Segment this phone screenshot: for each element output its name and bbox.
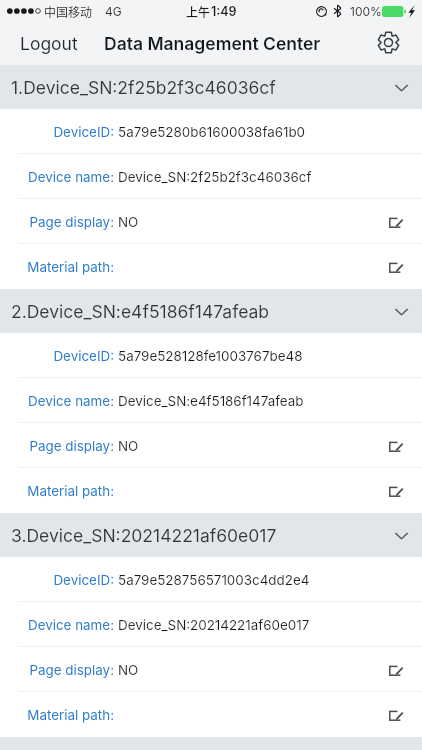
button[interactable]: Edit Page display: bbox=[379, 423, 413, 468]
staticText: Logout bbox=[20, 33, 78, 54]
staticText: NO bbox=[118, 662, 139, 678]
button[interactable]: Settings bbox=[371, 25, 405, 59]
button[interactable]: 3.Device_SN:20214221af60e017 bbox=[0, 513, 422, 557]
staticText: Material path: bbox=[27, 707, 114, 723]
staticText: 3.Device_SN:20214221af60e017 bbox=[11, 525, 277, 546]
button[interactable]: Device name: bbox=[0, 602, 422, 647]
staticText: DeviceID: bbox=[53, 124, 114, 140]
button[interactable]: 1.Device_SN:2f25b2f3c46036cf bbox=[0, 65, 422, 109]
button[interactable]: Edit Material path: bbox=[379, 692, 413, 737]
staticText: Device_SN:20214221af60e017 bbox=[118, 617, 310, 633]
staticText: Page display: bbox=[29, 662, 114, 678]
staticText: DeviceID: bbox=[53, 572, 114, 588]
button[interactable]: Device name: bbox=[0, 378, 422, 423]
button[interactable]: Page display: bbox=[0, 647, 422, 692]
staticText: 1:49 bbox=[211, 4, 237, 19]
staticText: Page display: bbox=[29, 214, 114, 230]
button[interactable]: Edit Page display: bbox=[379, 199, 413, 244]
button[interactable]: Material path: bbox=[0, 692, 422, 737]
staticText: Material path: bbox=[27, 259, 114, 275]
staticText: 1.Device_SN:2f25b2f3c46036cf bbox=[11, 77, 276, 98]
staticText: 4G bbox=[105, 4, 122, 19]
staticText: 5a79e5280b61600038fa61b0 bbox=[118, 124, 306, 140]
staticText: 上午 bbox=[186, 3, 211, 20]
button[interactable]: DeviceID: bbox=[0, 333, 422, 378]
button[interactable]: Page display: bbox=[0, 199, 422, 244]
staticText: Device name: bbox=[27, 393, 114, 409]
button[interactable]: Edit Material path: bbox=[379, 244, 413, 289]
button[interactable]: Edit Material path: bbox=[379, 468, 413, 513]
button[interactable]: Logout bbox=[16, 27, 82, 60]
staticText: NO bbox=[118, 214, 139, 230]
button[interactable]: 2.Device_SN:e4f5186f147afeab bbox=[0, 289, 422, 333]
staticText: 5a79e528128fe1003767be48 bbox=[118, 348, 303, 364]
staticText: DeviceID: bbox=[53, 348, 114, 364]
button[interactable]: DeviceID: bbox=[0, 109, 422, 154]
staticText: 中国移动 bbox=[44, 3, 93, 20]
staticText: Page display: bbox=[29, 438, 114, 454]
staticText: 2.Device_SN:e4f5186f147afeab bbox=[11, 301, 270, 322]
staticText: 100% bbox=[350, 4, 382, 19]
staticText: Device_SN:2f25b2f3c46036cf bbox=[118, 169, 312, 185]
staticText: Material path: bbox=[27, 483, 114, 499]
staticText: Device name: bbox=[27, 169, 114, 185]
button[interactable]: Device name: bbox=[0, 154, 422, 199]
button[interactable]: Page display: bbox=[0, 423, 422, 468]
staticText: Device name: bbox=[27, 617, 114, 633]
staticText: NO bbox=[118, 438, 139, 454]
staticText: Device_SN:e4f5186f147afeab bbox=[118, 393, 304, 409]
staticText: Data Management Center bbox=[104, 33, 321, 54]
staticText: 5a79e528756571003c4dd2e4 bbox=[118, 572, 310, 588]
button[interactable]: DeviceID: bbox=[0, 557, 422, 602]
button[interactable]: Edit Page display: bbox=[379, 647, 413, 692]
button[interactable]: Material path: bbox=[0, 244, 422, 289]
button[interactable]: Material path: bbox=[0, 468, 422, 513]
